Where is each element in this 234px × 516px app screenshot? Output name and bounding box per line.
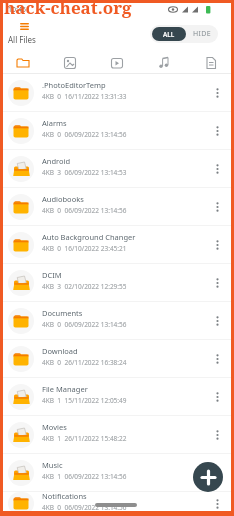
staticText: Music [42, 460, 63, 470]
button[interactable] [140, 48, 187, 73]
button[interactable] [207, 349, 227, 369]
button[interactable] [207, 197, 227, 217]
button[interactable] [93, 48, 140, 73]
button[interactable] [207, 463, 227, 483]
button[interactable] [207, 494, 227, 514]
staticText: File Manager [42, 384, 88, 394]
staticText: Notifications [42, 491, 87, 501]
button[interactable]: DCIM [0, 264, 234, 302]
staticText: 4KB 0 26/11/2022 16:38:24 [42, 358, 127, 367]
button[interactable] [207, 235, 227, 255]
button[interactable]: Notifications [0, 492, 234, 516]
button[interactable]: Music [0, 454, 234, 492]
staticText: Movies [42, 422, 67, 432]
staticText: 4KB 0 06/09/2022 13:14:56 [42, 320, 127, 329]
staticText: 4KB 0 06/09/2022 13:14:56 [42, 130, 127, 139]
staticText: 4KB 1 06/09/2022 13:14:56 [42, 472, 127, 481]
staticText: All Files [8, 34, 36, 45]
staticText: DCIM [42, 270, 62, 280]
button[interactable]: Movies [0, 416, 234, 454]
staticText: 4KB 0 06/09/2022 13:14:56 [42, 206, 127, 215]
staticText: 4KB 1 26/11/2022 15:48:22 [42, 434, 127, 443]
button[interactable] [207, 273, 227, 293]
staticText: 4KB 3 06/09/2022 13:14:53 [42, 168, 127, 177]
staticText: .PhotoEditorTemp [42, 80, 106, 90]
button[interactable] [207, 311, 227, 331]
button[interactable] [207, 83, 227, 103]
button[interactable] [207, 387, 227, 407]
staticText: 4KB 0 06/09/2022 13:14:56 [42, 503, 127, 512]
staticText: HIDE [193, 29, 212, 39]
staticText: Documents [42, 308, 83, 318]
staticText: 4KB 1 15/11/2022 12:05:49 [42, 396, 127, 405]
button[interactable]: Auto Background Changer [0, 226, 234, 264]
staticText: 10:45 [8, 5, 26, 15]
button[interactable]: Alarms [0, 112, 234, 150]
staticText: 4KB 3 02/10/2022 12:29:55 [42, 282, 127, 291]
staticText: 4KB 0 16/11/2022 13:31:33 [42, 92, 127, 101]
button[interactable]: File Manager [0, 378, 234, 416]
staticText: Audiobooks [42, 194, 84, 204]
button[interactable] [207, 425, 227, 445]
staticText: Download [42, 346, 78, 356]
staticText: ALL [163, 30, 175, 39]
button[interactable]: .PhotoEditorTemp [0, 74, 234, 112]
button[interactable] [187, 48, 234, 73]
staticText: Android [42, 156, 71, 166]
button[interactable]: ALL [152, 27, 186, 41]
button[interactable]: Documents [0, 302, 234, 340]
staticText: Alarms [42, 118, 67, 128]
button[interactable] [207, 159, 227, 179]
staticText: Auto Background Changer [42, 232, 136, 242]
button[interactable]: HIDE [186, 25, 218, 43]
button[interactable] [193, 462, 223, 492]
button[interactable]: Android [0, 150, 234, 188]
button[interactable] [0, 48, 46, 73]
button[interactable]: Audiobooks [0, 188, 234, 226]
button[interactable] [46, 48, 93, 73]
button[interactable] [207, 121, 227, 141]
staticText: 4KB 0 16/10/2022 23:45:21 [42, 244, 127, 253]
button[interactable] [18, 20, 30, 32]
button[interactable]: Download [0, 340, 234, 378]
staticText: hack-cheat.org [4, 0, 132, 19]
